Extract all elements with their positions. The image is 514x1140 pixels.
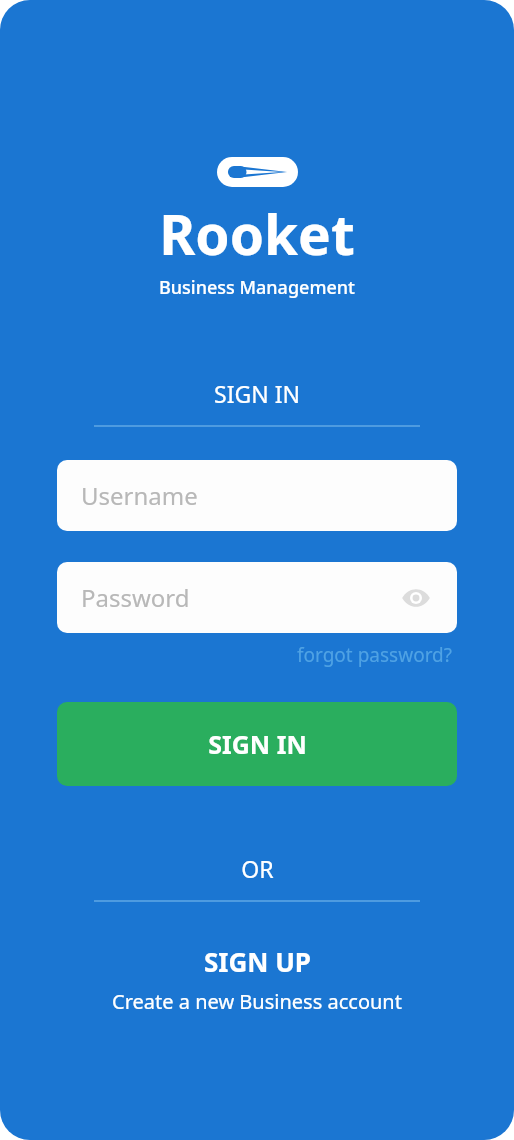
button[interactable]: Show password — [399, 581, 433, 615]
staticText: SIGN IN — [208, 727, 307, 761]
staticText: SIGN UP — [204, 944, 311, 979]
staticText: Create a new Business account — [112, 988, 402, 1015]
staticText: forgot password? — [297, 642, 453, 668]
staticText: SIGN IN — [214, 378, 300, 409]
button[interactable]: SIGN IN — [57, 702, 457, 786]
button[interactable]: Password — [57, 562, 457, 633]
staticText: OR — [241, 853, 274, 884]
staticText: Rooket — [159, 196, 355, 271]
button[interactable]: forgot password? — [293, 640, 457, 670]
staticText: Username — [81, 479, 198, 512]
button[interactable]: Username — [57, 460, 457, 531]
staticText: Password — [81, 581, 190, 614]
button[interactable]: SIGN UP — [0, 940, 514, 1019]
staticText: Business Management — [159, 275, 355, 300]
